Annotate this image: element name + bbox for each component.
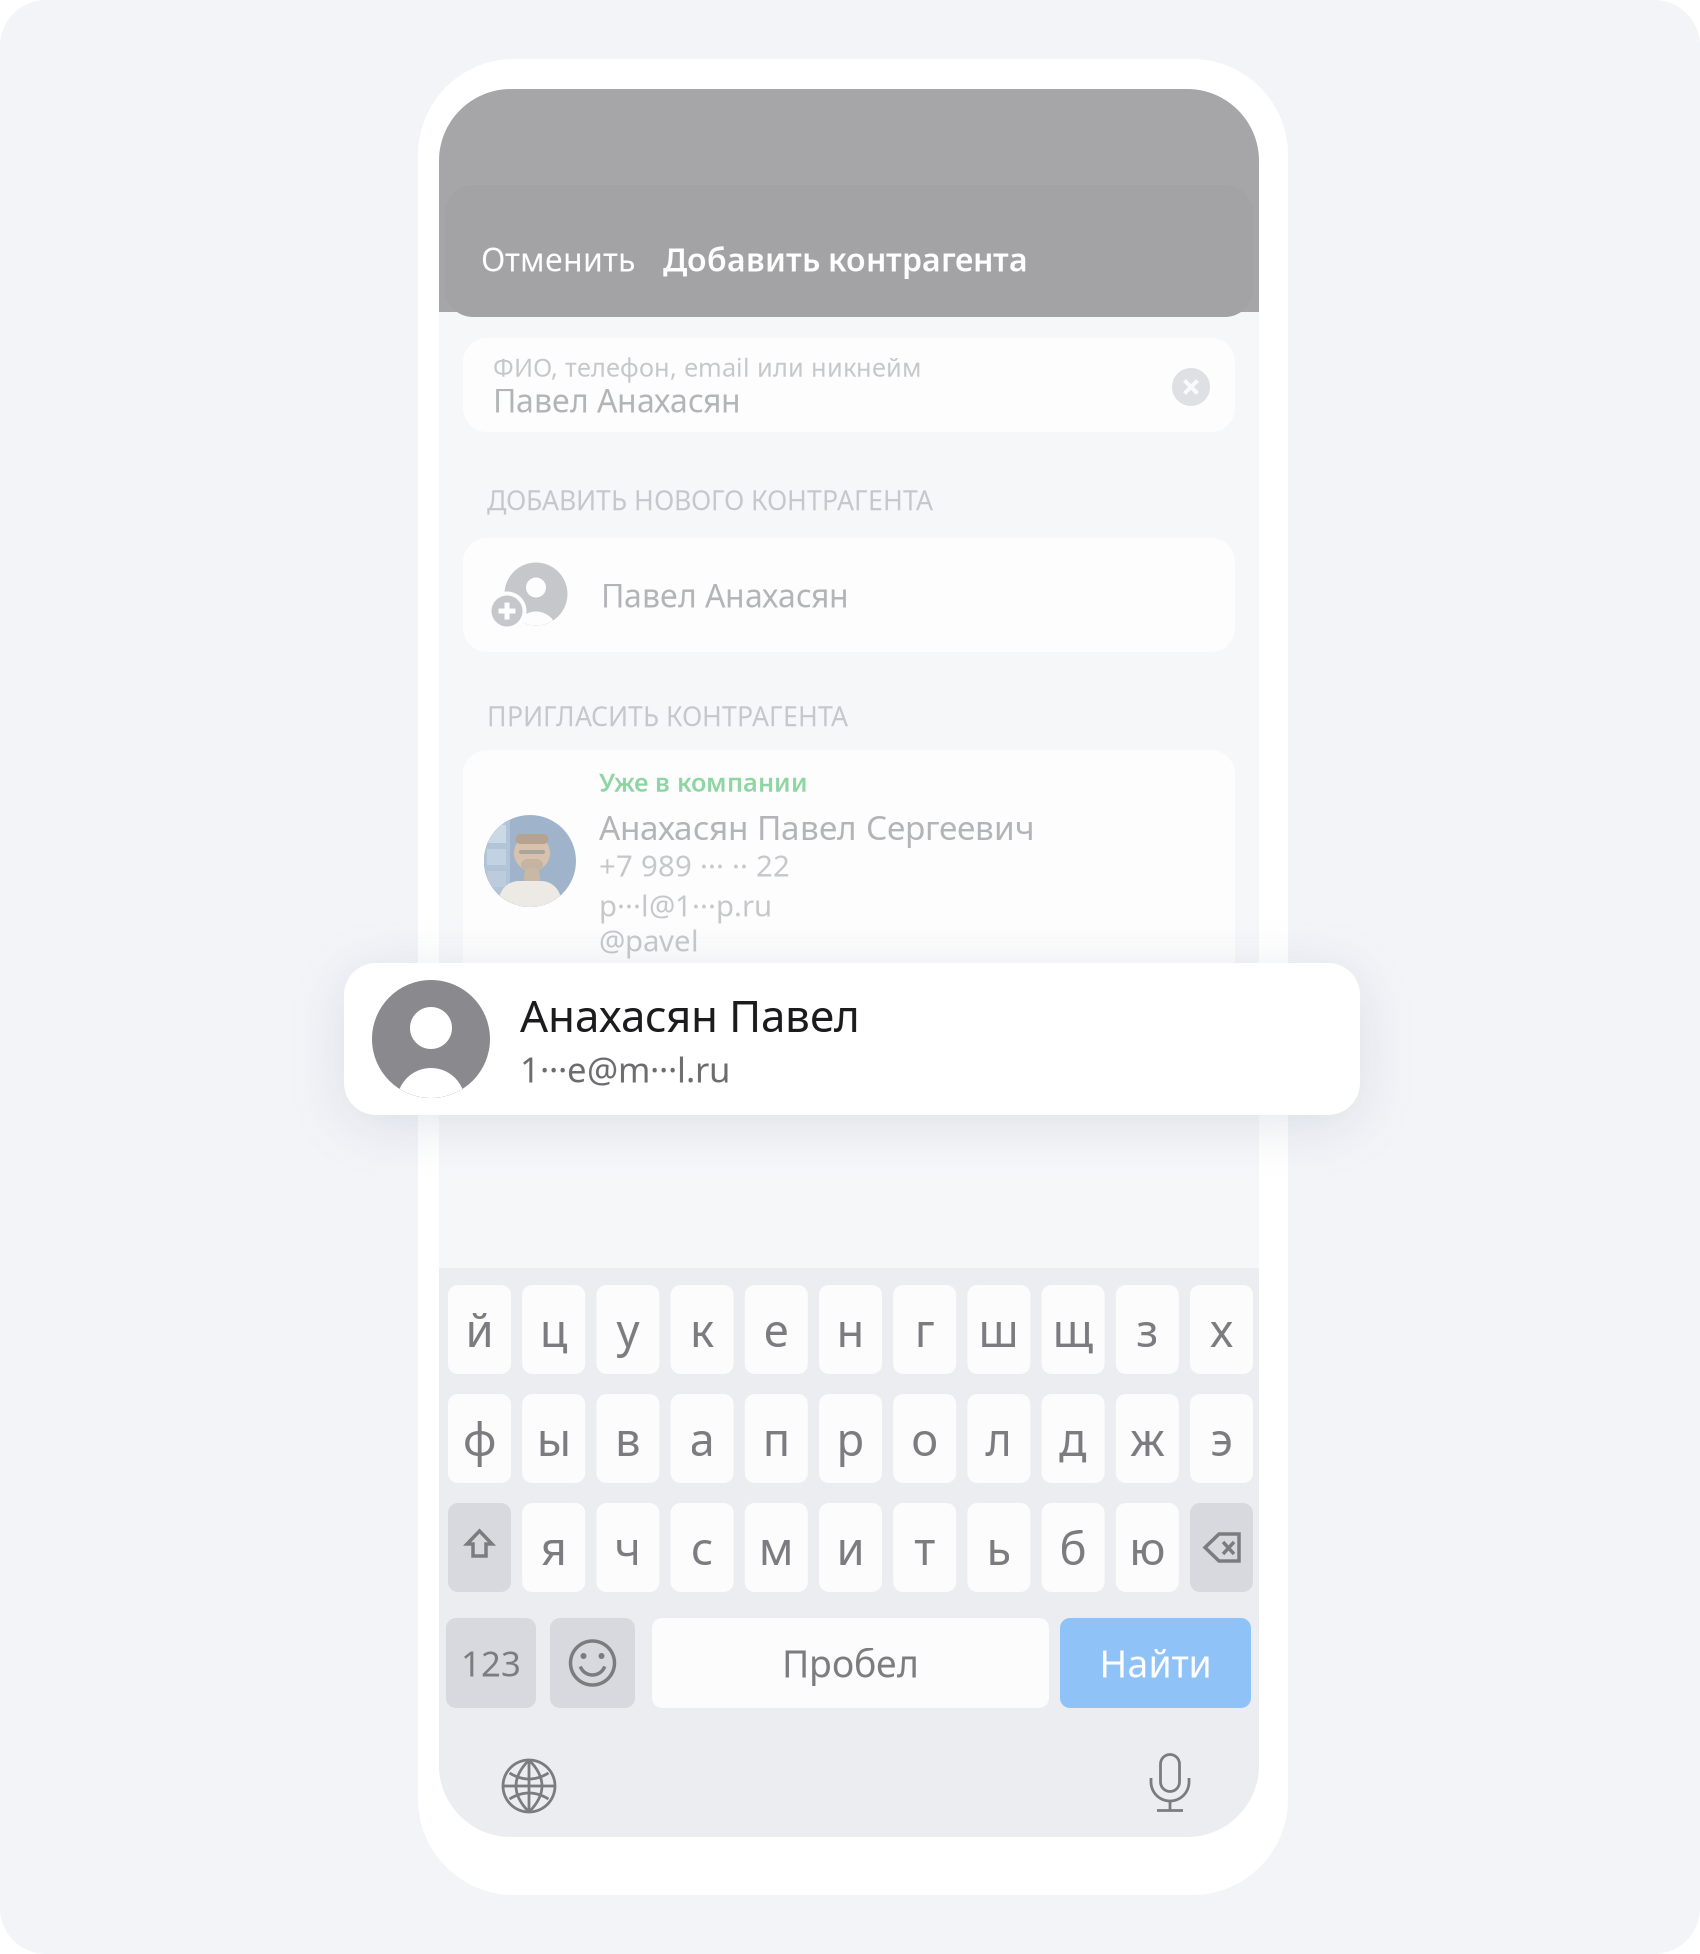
staticText: ФИО, телефон, email или никнейм	[493, 350, 921, 384]
staticText: Пробел	[782, 1638, 919, 1688]
button[interactable]: р	[819, 1394, 882, 1483]
staticText: н	[836, 1299, 864, 1360]
button[interactable]: п	[745, 1394, 808, 1483]
staticText: +7 989 ··· ·· 22	[599, 845, 790, 884]
button[interactable]: е	[745, 1285, 808, 1374]
button[interactable]: Shift	[448, 1503, 511, 1592]
staticText: л	[985, 1408, 1012, 1469]
button[interactable]: ц	[522, 1285, 585, 1374]
staticText: у	[616, 1299, 639, 1360]
button[interactable]: м	[745, 1503, 808, 1592]
button[interactable]: Павел Анахасян	[463, 538, 1235, 652]
button[interactable]: Анахасян Павел	[344, 963, 1360, 1115]
button[interactable]: й	[448, 1285, 511, 1374]
staticText: в	[615, 1408, 641, 1469]
button[interactable]: Добавить контрагента	[657, 230, 1057, 288]
staticText: м	[759, 1517, 794, 1578]
button[interactable]: т	[893, 1503, 956, 1592]
button[interactable]: и	[819, 1503, 882, 1592]
staticText: а	[690, 1408, 715, 1469]
staticText: Павел Анахасян	[493, 379, 741, 421]
staticText: p···l@1···p.ru	[599, 885, 772, 924]
staticText: ф	[463, 1408, 496, 1469]
staticText: е	[764, 1299, 789, 1360]
button[interactable]: Отменить	[475, 232, 645, 286]
button[interactable]: Emoji	[550, 1618, 635, 1708]
button[interactable]: у	[596, 1285, 659, 1374]
staticText: ц	[540, 1299, 568, 1360]
button[interactable]: ф	[448, 1394, 511, 1483]
staticText: щ	[1053, 1299, 1094, 1360]
button[interactable]: л	[967, 1394, 1030, 1483]
staticText: г	[915, 1299, 935, 1360]
staticText: 1···e@m···l.ru	[520, 1046, 730, 1092]
staticText: д	[1059, 1408, 1087, 1469]
staticText: @pavel	[599, 920, 699, 959]
staticText: о	[911, 1408, 938, 1469]
button[interactable]: Найти	[1060, 1618, 1251, 1708]
staticText: и	[836, 1517, 864, 1578]
staticText: ь	[986, 1517, 1011, 1578]
staticText: Добавить контрагента	[663, 238, 1028, 280]
button[interactable]: ФИО, телефон, email или никнейм	[463, 338, 1235, 432]
button[interactable]: я	[522, 1503, 585, 1592]
staticText: с	[691, 1517, 713, 1578]
button[interactable]: о	[893, 1394, 956, 1483]
button[interactable]: Delete	[1190, 1503, 1253, 1592]
staticText: э	[1210, 1408, 1232, 1469]
button[interactable]: с	[671, 1503, 734, 1592]
button[interactable]: б	[1042, 1503, 1105, 1592]
staticText: Павел Анахасян	[601, 574, 849, 616]
staticText: ч	[614, 1517, 641, 1578]
button[interactable]: х	[1190, 1285, 1253, 1374]
staticText: б	[1060, 1517, 1087, 1578]
staticText: я	[541, 1517, 567, 1578]
button[interactable]: Пробел	[652, 1618, 1049, 1708]
button[interactable]: ю	[1116, 1503, 1179, 1592]
staticText: ПРИГЛАСИТЬ КОНТРАГЕНТА	[487, 698, 848, 734]
staticText: х	[1210, 1299, 1233, 1360]
staticText: Анахасян Павел Сергеевич	[599, 805, 1035, 849]
staticText: п	[763, 1408, 790, 1469]
button[interactable]: щ	[1042, 1285, 1105, 1374]
staticText: р	[836, 1408, 864, 1469]
staticText: ж	[1130, 1408, 1164, 1469]
staticText: ю	[1129, 1517, 1165, 1578]
button[interactable]: ы	[522, 1394, 585, 1483]
staticText: Анахасян Павел	[520, 986, 860, 1044]
staticText: ш	[978, 1299, 1019, 1360]
button[interactable]: Уже в компании	[463, 750, 1235, 1050]
button[interactable]: ь	[967, 1503, 1030, 1592]
staticText: ы	[537, 1408, 571, 1469]
staticText: Уже в компании	[599, 765, 808, 799]
button[interactable]: ч	[596, 1503, 659, 1592]
button[interactable]: г	[893, 1285, 956, 1374]
staticText: з	[1136, 1299, 1158, 1360]
staticText: Найти	[1099, 1638, 1211, 1688]
button[interactable]: Next keyboard	[497, 1754, 561, 1818]
staticText: ДОБАВИТЬ НОВОГО КОНТРАГЕНТА	[487, 482, 933, 518]
button[interactable]: д	[1042, 1394, 1105, 1483]
button[interactable]: Dictation	[1138, 1750, 1202, 1814]
button[interactable]: э	[1190, 1394, 1253, 1483]
button[interactable]: к	[671, 1285, 734, 1374]
staticText: к	[690, 1299, 714, 1360]
button[interactable]: 123	[446, 1618, 536, 1708]
staticText: й	[465, 1299, 493, 1360]
button[interactable]: н	[819, 1285, 882, 1374]
staticText: т	[914, 1517, 935, 1578]
button[interactable]: а	[671, 1394, 734, 1483]
staticText: 123	[461, 1640, 521, 1686]
button[interactable]: з	[1116, 1285, 1179, 1374]
staticText: Отменить	[481, 238, 635, 280]
button[interactable]: ш	[967, 1285, 1030, 1374]
button[interactable]: в	[596, 1394, 659, 1483]
button[interactable]: ж	[1116, 1394, 1179, 1483]
